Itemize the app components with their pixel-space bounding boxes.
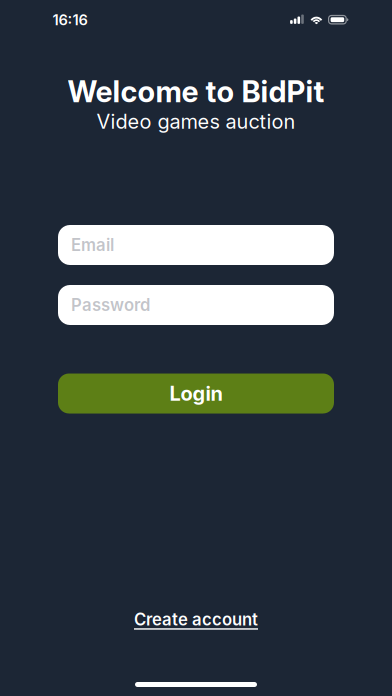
staticText: Login [169, 381, 222, 406]
button[interactable]: Email [58, 225, 334, 265]
staticText: Welcome to BidPit [67, 74, 324, 109]
button[interactable]: Login [58, 373, 334, 413]
staticText: Email [71, 235, 114, 255]
button[interactable]: Create account [134, 609, 258, 630]
button[interactable]: Password [58, 285, 334, 325]
staticText: Create account [134, 609, 258, 630]
staticText: Password [71, 295, 150, 315]
staticText: 16:16 [52, 11, 87, 29]
staticText: Video games auction [96, 109, 295, 134]
